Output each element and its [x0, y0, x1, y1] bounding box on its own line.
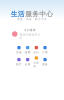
- staticText: 便捷 · 高效 · 触手可及: [17, 17, 47, 21]
- button[interactable]: 缴费: [23, 46, 32, 54]
- button[interactable]: 出行: [32, 46, 41, 54]
- staticText: 充值: [16, 51, 22, 54]
- button[interactable]: 公积金: [32, 56, 41, 68]
- button[interactable]: 社保: [23, 58, 32, 66]
- staticText: 精选好物低至五折: [19, 33, 40, 39]
- staticText: 医疗: [16, 63, 22, 66]
- staticText: 出行: [33, 51, 39, 54]
- staticText: 今日推荐: [24, 29, 36, 32]
- button[interactable]: 充值: [15, 46, 23, 54]
- staticText: 更多: [42, 63, 48, 66]
- button[interactable]: 更多: [41, 58, 49, 66]
- staticText: 缴费: [25, 51, 31, 54]
- staticText: 公积金: [33, 61, 39, 68]
- staticText: 订票: [42, 51, 48, 54]
- button[interactable]: 医疗: [15, 58, 23, 66]
- staticText: 服务中心: [25, 10, 53, 18]
- button[interactable]: 订票: [41, 46, 49, 54]
- staticText: 生活: [11, 10, 25, 18]
- staticText: 社保: [25, 63, 31, 66]
